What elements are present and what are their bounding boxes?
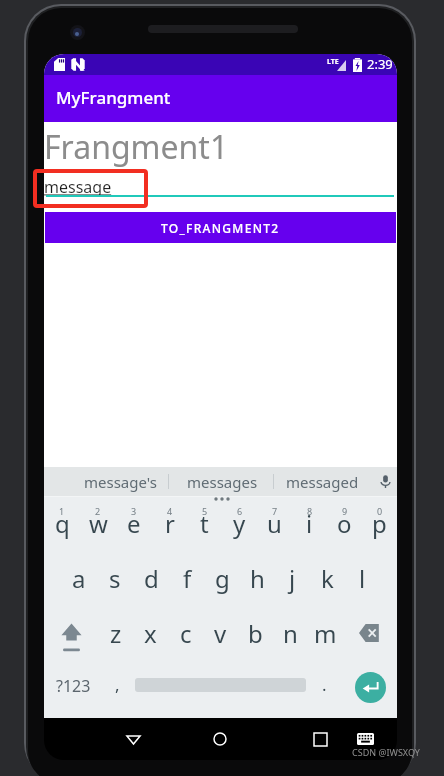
staticText: i	[306, 507, 313, 540]
staticText: y	[233, 507, 246, 540]
staticText: messaged	[286, 472, 359, 492]
button[interactable]: l	[345, 555, 380, 607]
staticText: 2	[95, 505, 101, 517]
staticText: 5	[202, 505, 208, 517]
button[interactable]: k	[310, 555, 345, 607]
button[interactable]: ,	[99, 656, 135, 712]
button[interactable]: d	[133, 555, 169, 607]
staticText: r	[165, 507, 175, 540]
staticText: MyFrangment	[56, 86, 171, 109]
staticText: 2:39	[367, 55, 393, 73]
button[interactable]: f	[169, 555, 205, 607]
button[interactable]: 4	[152, 500, 187, 552]
button[interactable]: v	[203, 604, 238, 656]
button[interactable]: Space	[135, 656, 306, 712]
staticText: c	[180, 617, 192, 650]
button[interactable]: 1	[44, 500, 80, 552]
button[interactable]: g	[205, 555, 240, 607]
staticText: n	[283, 617, 298, 650]
staticText: d	[144, 562, 159, 595]
staticText: 9	[342, 505, 348, 517]
staticText: p	[372, 507, 387, 540]
staticText: ,	[115, 673, 120, 696]
staticText: l	[359, 562, 366, 595]
staticText: CSDN @IWSXQY	[352, 746, 420, 758]
staticText: m	[314, 617, 337, 650]
staticText: 0	[377, 505, 383, 517]
button[interactable]: b	[238, 604, 273, 656]
staticText: Frangment1	[44, 125, 229, 169]
button[interactable]: 5	[187, 500, 222, 552]
button[interactable]: Enter	[349, 670, 391, 705]
staticText: LTE	[327, 57, 339, 67]
staticText: t	[200, 507, 209, 540]
button[interactable]: messaged	[272, 467, 372, 496]
button[interactable]: a	[61, 555, 97, 607]
button[interactable]: Home	[185, 718, 255, 760]
staticText: g	[215, 562, 230, 595]
staticText: 6	[237, 505, 243, 517]
button[interactable]: MyFrangment	[44, 75, 397, 122]
button[interactable]: z	[98, 604, 133, 656]
button[interactable]: s	[97, 555, 133, 607]
staticText: ?123	[56, 675, 91, 697]
button[interactable]: 2	[80, 500, 116, 552]
staticText: f	[183, 562, 192, 595]
button[interactable]: 3	[116, 500, 152, 552]
staticText: 7	[272, 505, 278, 517]
staticText: e	[127, 507, 141, 540]
staticText: x	[144, 617, 157, 650]
staticText: v	[214, 617, 227, 650]
staticText: k	[321, 562, 334, 595]
button[interactable]: TO_FRANGMENT2	[45, 212, 396, 243]
staticText: message	[44, 176, 112, 198]
button[interactable]: j	[275, 555, 310, 607]
button[interactable]: Back	[98, 718, 168, 760]
staticText: .	[322, 673, 327, 696]
button[interactable]: Voice input	[367, 467, 397, 496]
button[interactable]: c	[168, 604, 203, 656]
button[interactable]: Shift	[44, 604, 98, 656]
staticText: message's	[84, 472, 157, 492]
staticText: h	[250, 562, 265, 595]
staticText: w	[89, 507, 108, 540]
staticText: messages	[187, 472, 258, 492]
button[interactable]: Switch keyboard	[340, 718, 390, 760]
button[interactable]: .	[306, 656, 342, 712]
staticText: TO_FRANGMENT2	[161, 220, 280, 236]
staticText: b	[248, 617, 263, 650]
button[interactable]: 8	[292, 500, 327, 552]
button[interactable]: 9	[327, 500, 362, 552]
staticText: 4	[167, 505, 173, 517]
staticText: a	[72, 562, 86, 595]
button[interactable]: m	[308, 604, 343, 656]
staticText: q	[55, 507, 70, 540]
staticText: 1	[59, 505, 65, 517]
button[interactable]: Recent apps	[285, 718, 355, 760]
staticText: u	[267, 507, 282, 540]
staticText: j	[289, 562, 296, 595]
button[interactable]: ?123	[47, 656, 99, 712]
staticText: o	[337, 507, 352, 540]
button[interactable]: 0	[362, 500, 397, 552]
button[interactable]: n	[273, 604, 308, 656]
button[interactable]: 6	[222, 500, 257, 552]
staticText: s	[109, 562, 121, 595]
staticText: z	[110, 617, 122, 650]
button[interactable]: h	[240, 555, 275, 607]
button[interactable]: x	[133, 604, 168, 656]
button[interactable]: 7	[257, 500, 292, 552]
button[interactable]: messages	[172, 467, 272, 496]
staticText: 3	[131, 505, 137, 517]
button[interactable]: Backspace	[343, 604, 397, 656]
staticText: 8	[307, 505, 313, 517]
button[interactable]: message's	[65, 467, 176, 496]
